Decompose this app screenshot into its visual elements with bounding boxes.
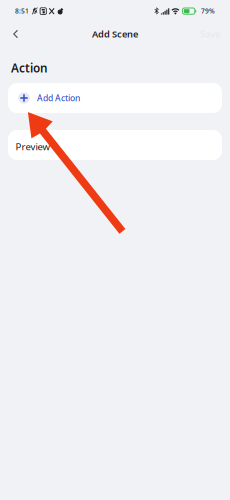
staticText: Add Action bbox=[37, 92, 80, 104]
button[interactable]: Preview bbox=[8, 130, 222, 160]
staticText: 79% bbox=[201, 6, 215, 16]
staticText: Action bbox=[11, 60, 47, 76]
staticText: Add Scene bbox=[92, 28, 138, 40]
button[interactable]: Back bbox=[0, 23, 31, 45]
staticText: 8:51 bbox=[15, 6, 29, 16]
button[interactable]: Add Action bbox=[8, 83, 222, 113]
staticText: Preview bbox=[16, 140, 51, 153]
staticText: Save bbox=[200, 28, 220, 40]
